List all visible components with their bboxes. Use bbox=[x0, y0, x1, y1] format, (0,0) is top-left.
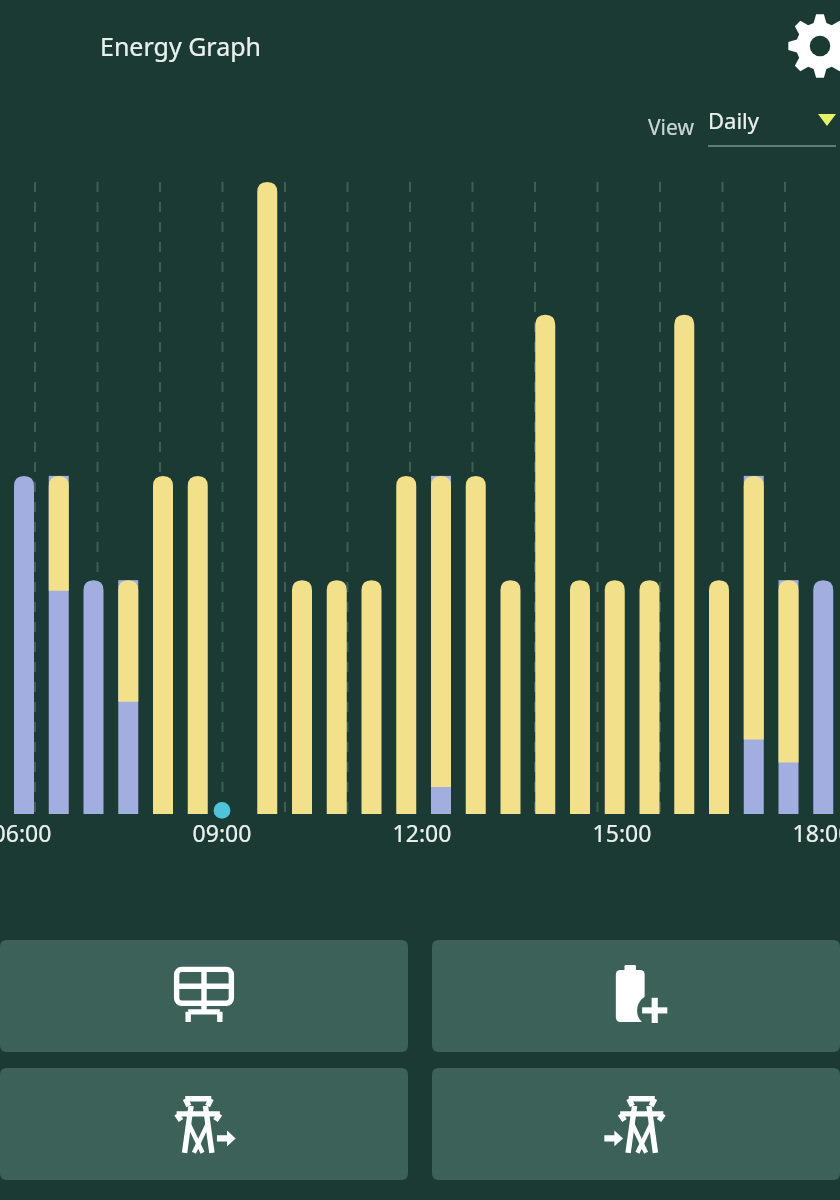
staticText: 06:00 bbox=[0, 817, 72, 848]
button[interactable]: Daily bbox=[708, 105, 836, 149]
staticText: View bbox=[648, 113, 694, 142]
staticText: 12:00 bbox=[372, 817, 472, 848]
staticText: Daily bbox=[708, 105, 818, 135]
staticText: 15:00 bbox=[572, 817, 672, 848]
button[interactable]: Battery charge bbox=[432, 940, 840, 1052]
button[interactable]: Grid import bbox=[432, 1068, 840, 1180]
staticText: 09:00 bbox=[172, 817, 272, 848]
staticText: 18:00 bbox=[772, 817, 840, 848]
button[interactable]: Solar panels bbox=[0, 940, 408, 1052]
button[interactable]: Settings bbox=[782, 8, 840, 84]
staticText: Energy Graph bbox=[100, 29, 262, 63]
button[interactable]: Grid export bbox=[0, 1068, 408, 1180]
